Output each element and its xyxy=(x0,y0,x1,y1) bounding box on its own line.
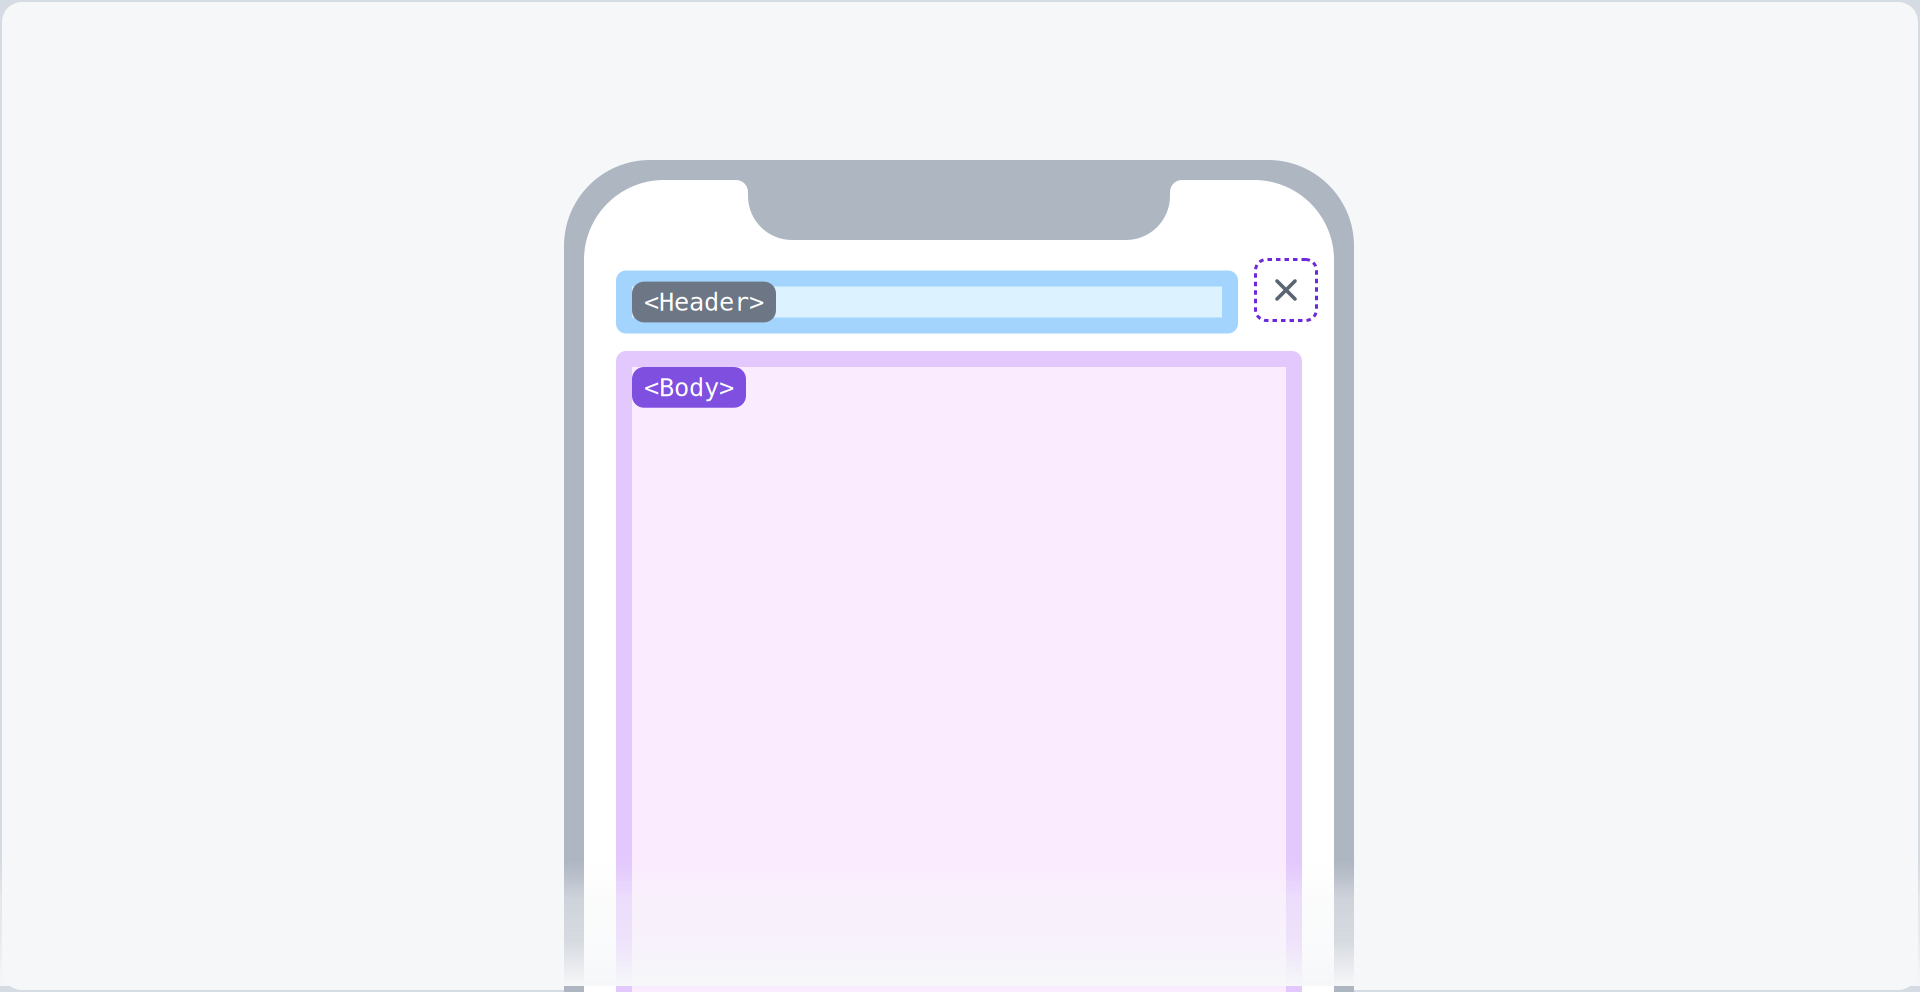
button[interactable]: Close xyxy=(1254,258,1318,322)
staticText: <Body> xyxy=(644,373,734,402)
staticText: <Header> xyxy=(644,288,764,316)
